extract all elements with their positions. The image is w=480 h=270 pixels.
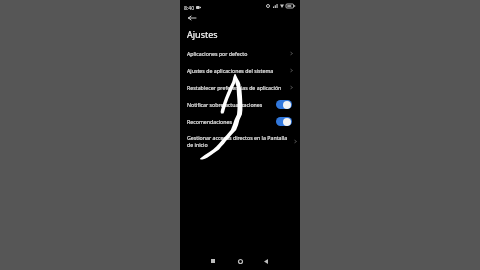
staticText: Ajustes de aplicaciones del sistema: [187, 67, 287, 74]
button[interactable]: Notificar sobre actualizaciones: [180, 96, 300, 113]
button[interactable]: Recent apps: [206, 254, 220, 268]
staticText: Ajustes: [187, 28, 218, 40]
staticText: Notificar sobre actualizaciones: [187, 101, 274, 108]
button[interactable]: Toggle: [276, 117, 292, 126]
button[interactable]: Gestionar accesos directos en la Pantall…: [180, 130, 300, 152]
button[interactable]: Restablecer preferencias de aplicación: [180, 79, 300, 96]
button[interactable]: Recomendaciones: [180, 113, 300, 130]
button[interactable]: Back: [259, 254, 273, 268]
button[interactable]: Ajustes de aplicaciones del sistema: [180, 62, 300, 79]
staticText: Recomendaciones: [187, 118, 274, 125]
staticText: Restablecer preferencias de aplicación: [187, 84, 287, 91]
staticText: Gestionar accesos directos en la Pantall…: [187, 134, 291, 149]
button[interactable]: Toggle: [276, 100, 292, 109]
button[interactable]: Home: [233, 254, 247, 268]
button[interactable]: Aplicaciones por defecto: [180, 45, 300, 62]
staticText: Aplicaciones por defecto: [187, 50, 287, 57]
button[interactable]: Back: [185, 11, 199, 25]
staticText: 8:40: [184, 4, 195, 11]
